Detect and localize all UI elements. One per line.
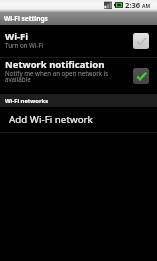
button[interactable]: Enabled checkbox	[133, 68, 149, 84]
button[interactable]: Add Wi-Fi network	[0, 107, 157, 132]
staticText: Wi-Fi networks	[5, 97, 49, 105]
staticText: Network notification	[5, 58, 105, 71]
other: Battery charging	[114, 1, 123, 9]
button[interactable]: Network notification	[0, 58, 157, 94]
button[interactable]: Disabled checkbox	[133, 33, 149, 49]
button[interactable]: Wi-Fi	[0, 25, 157, 57]
staticText: Wi-Fi	[5, 30, 29, 43]
staticText: 2:36	[125, 0, 141, 10]
staticText: Notify me when an open network is availa…	[5, 69, 129, 84]
staticText: Add Wi-Fi network	[9, 113, 93, 126]
other: Signal strength	[104, 1, 112, 9]
staticText: Turn on Wi-Fi	[5, 41, 44, 49]
staticText: Wi-Fi settings	[4, 14, 48, 23]
staticText: AM	[142, 3, 151, 10]
